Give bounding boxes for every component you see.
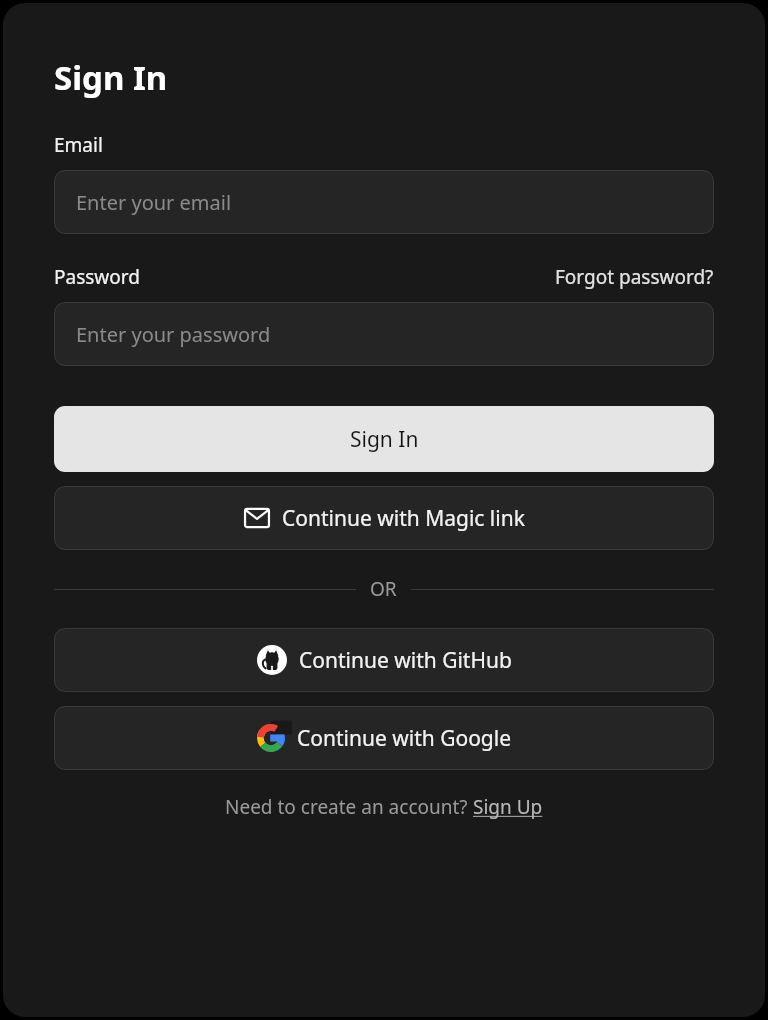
staticText: Sign In bbox=[54, 55, 168, 100]
button[interactable]: Email bbox=[54, 486, 714, 550]
button[interactable]: Sign In bbox=[54, 406, 714, 472]
button[interactable]: Sign Up bbox=[473, 794, 543, 820]
staticText: Sign In bbox=[350, 425, 419, 454]
staticText: Password bbox=[54, 264, 140, 290]
staticText: Enter your email bbox=[76, 189, 232, 216]
staticText: OR bbox=[370, 576, 397, 602]
other: Email bbox=[244, 505, 270, 531]
staticText: Continue with GitHub bbox=[299, 646, 512, 675]
staticText: Email bbox=[54, 132, 103, 158]
staticText: Sign Up bbox=[473, 794, 543, 820]
button[interactable]: Enter your email bbox=[54, 170, 714, 234]
button[interactable]: GitHub bbox=[54, 628, 714, 692]
button[interactable]: Google bbox=[54, 706, 714, 770]
staticText: Need to create an account? bbox=[225, 794, 473, 820]
button[interactable]: Enter your password bbox=[54, 302, 714, 366]
button[interactable]: Forgot password? bbox=[555, 264, 714, 290]
staticText: Forgot password? bbox=[555, 264, 714, 290]
other: Google bbox=[257, 724, 285, 752]
staticText: Enter your password bbox=[76, 321, 271, 348]
staticText: Continue with Google bbox=[297, 724, 512, 753]
other: GitHub bbox=[257, 645, 287, 675]
staticText: Continue with Magic link bbox=[282, 504, 525, 533]
